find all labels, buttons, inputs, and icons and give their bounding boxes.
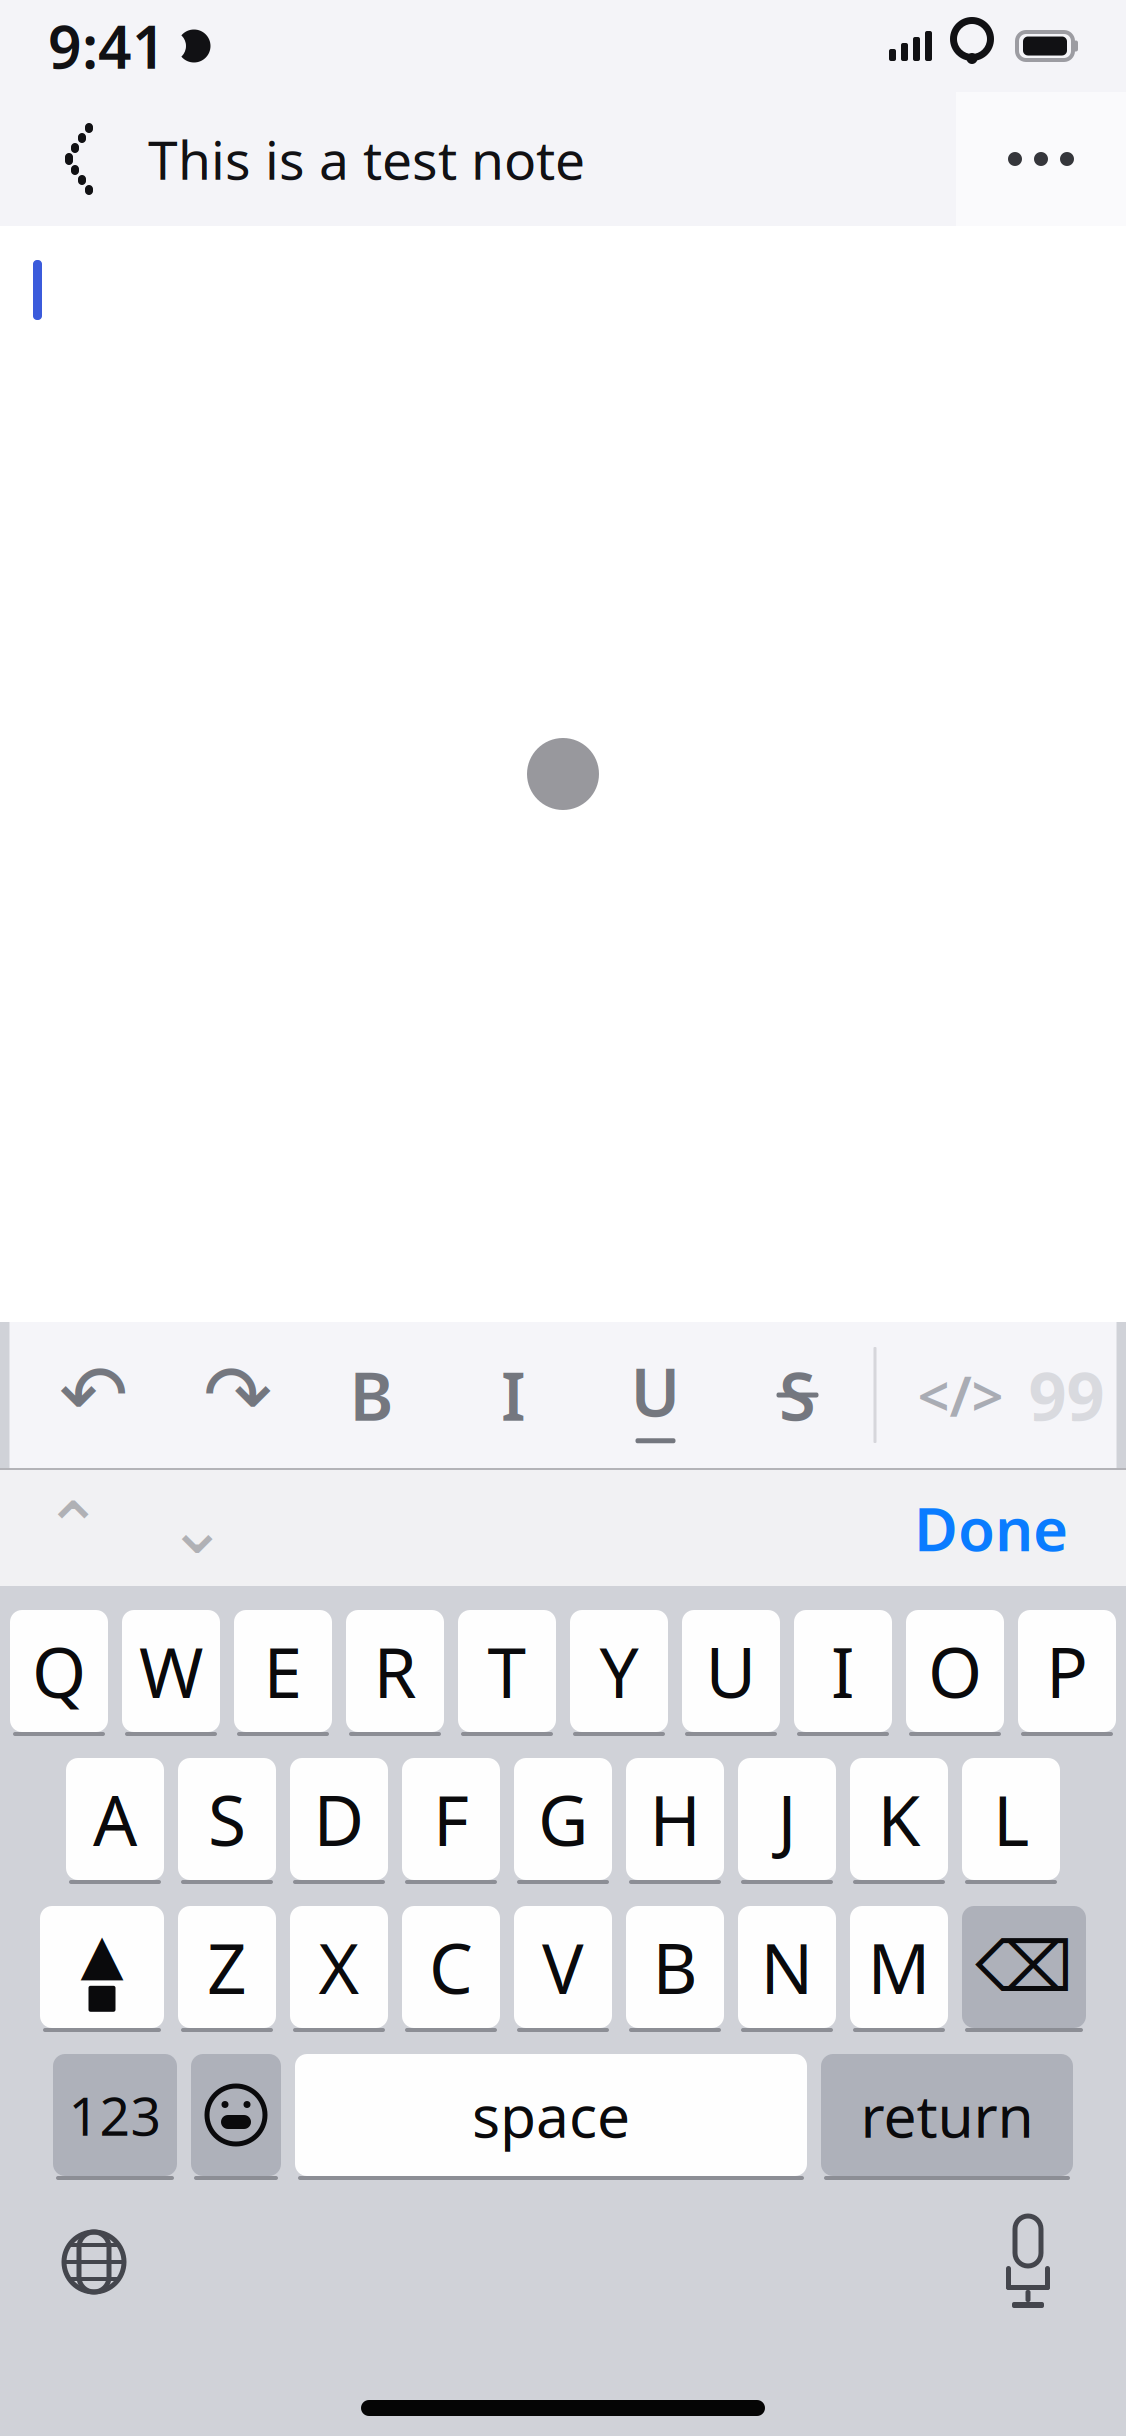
- staticText: F: [433, 1773, 469, 1865]
- button[interactable]: 123: [53, 2054, 177, 2180]
- button[interactable]: Z: [178, 1906, 276, 2032]
- staticText: ↶: [59, 1348, 128, 1442]
- button[interactable]: U: [607, 1347, 703, 1443]
- staticText: P: [1046, 1625, 1088, 1717]
- staticText: Done: [914, 1488, 1068, 1568]
- button[interactable]: Shift: [40, 1906, 164, 2032]
- staticText: 123: [68, 2080, 161, 2150]
- button[interactable]: G: [514, 1758, 612, 1884]
- button[interactable]: N: [738, 1906, 836, 2032]
- staticText: 99: [1028, 1351, 1104, 1439]
- staticText: K: [877, 1773, 920, 1865]
- button[interactable]: B: [323, 1347, 419, 1443]
- staticText: I: [501, 1351, 526, 1439]
- staticText: B: [349, 1351, 393, 1439]
- staticText: C: [429, 1921, 473, 2013]
- staticText: 9:41: [48, 7, 166, 85]
- staticText: H: [649, 1773, 700, 1865]
- button[interactable]: P: [1018, 1610, 1116, 1736]
- button[interactable]: Back: [0, 92, 120, 226]
- button[interactable]: Delete: [962, 1906, 1086, 2032]
- button[interactable]: Next keyboard: [34, 2206, 154, 2318]
- staticText: D: [313, 1773, 364, 1865]
- button[interactable]: Undo: [35, 1347, 151, 1443]
- button[interactable]: D: [290, 1758, 388, 1884]
- button[interactable]: Previous: [28, 1478, 118, 1578]
- staticText: A: [93, 1773, 137, 1865]
- button[interactable]: W: [122, 1610, 220, 1736]
- button[interactable]: More options: [956, 92, 1126, 226]
- staticText: S: [779, 1351, 816, 1439]
- staticText: I: [831, 1625, 855, 1717]
- button[interactable]: Quote: [1016, 1347, 1116, 1443]
- button[interactable]: V: [514, 1906, 612, 2032]
- button[interactable]: Emoji: [191, 2054, 281, 2180]
- button[interactable]: L: [962, 1758, 1060, 1884]
- button[interactable]: S: [178, 1758, 276, 1884]
- staticText: </>: [917, 1358, 1003, 1432]
- staticText: W: [139, 1625, 203, 1717]
- button[interactable]: U: [682, 1610, 780, 1736]
- button[interactable]: J: [738, 1758, 836, 1884]
- staticText: T: [487, 1625, 526, 1717]
- staticText: ⌫: [975, 1928, 1073, 2006]
- button[interactable]: S: [749, 1347, 845, 1443]
- button[interactable]: X: [290, 1906, 388, 2032]
- staticText: R: [373, 1625, 416, 1717]
- staticText: S: [208, 1773, 246, 1865]
- staticText: U: [705, 1625, 756, 1717]
- staticText: O: [928, 1625, 982, 1717]
- staticText: Q: [32, 1625, 86, 1717]
- staticText: Y: [599, 1625, 638, 1717]
- button[interactable]: A: [66, 1758, 164, 1884]
- button[interactable]: M: [850, 1906, 948, 2032]
- staticText: space: [472, 2076, 630, 2154]
- staticText: G: [538, 1773, 588, 1865]
- button[interactable]: H: [626, 1758, 724, 1884]
- button[interactable]: Q: [10, 1610, 108, 1736]
- staticText: X: [318, 1921, 359, 2013]
- button[interactable]: I: [794, 1610, 892, 1736]
- button[interactable]: T: [458, 1610, 556, 1736]
- staticText: U: [630, 1347, 680, 1435]
- staticText: ↷: [203, 1348, 272, 1442]
- button[interactable]: E: [234, 1610, 332, 1736]
- staticText: ⌄: [167, 1487, 227, 1569]
- button[interactable]: Dictate: [968, 2206, 1088, 2318]
- button[interactable]: B: [626, 1906, 724, 2032]
- button[interactable]: Next: [152, 1478, 242, 1578]
- button[interactable]: return: [821, 2054, 1073, 2180]
- staticText: ⌃: [43, 1487, 103, 1569]
- button[interactable]: Code: [904, 1347, 1016, 1443]
- button[interactable]: F: [402, 1758, 500, 1884]
- button[interactable]: space: [295, 2054, 807, 2180]
- button[interactable]: Redo: [179, 1347, 295, 1443]
- button[interactable]: I: [465, 1347, 561, 1443]
- button[interactable]: K: [850, 1758, 948, 1884]
- button[interactable]: R: [346, 1610, 444, 1736]
- button[interactable]: C: [402, 1906, 500, 2032]
- staticText: ▲: [80, 1922, 123, 1986]
- button[interactable]: Done: [892, 1478, 1090, 1578]
- staticText: Z: [207, 1921, 247, 2013]
- staticText: N: [760, 1921, 813, 2013]
- staticText: V: [542, 1921, 584, 2013]
- button[interactable]: O: [906, 1610, 1004, 1736]
- staticText: E: [263, 1625, 302, 1717]
- button[interactable]: Y: [570, 1610, 668, 1736]
- staticText: M: [867, 1921, 930, 2013]
- staticText: J: [777, 1773, 796, 1865]
- staticText: return: [860, 2076, 1033, 2154]
- staticText: L: [993, 1773, 1029, 1865]
- staticText: This is a test note: [148, 124, 585, 194]
- staticText: B: [652, 1921, 697, 2013]
